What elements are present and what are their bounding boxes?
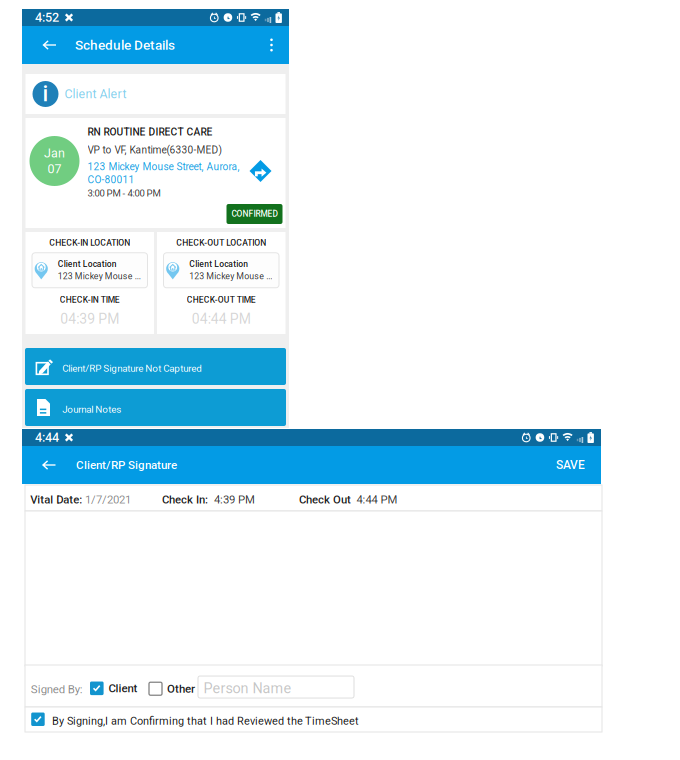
staticText: 04:39 PM xyxy=(60,311,119,327)
button[interactable]: Client/RP Signature Not Captured xyxy=(25,348,286,385)
button[interactable]: i xyxy=(25,74,285,114)
staticText: Vital Date: xyxy=(30,493,82,506)
staticText: 4:44 xyxy=(35,430,59,445)
staticText: Jan xyxy=(44,146,65,160)
staticText: VP to VF, Kantime(6330-MED) xyxy=(87,144,222,156)
staticText: CHECK-OUT TIME xyxy=(187,295,256,305)
staticText: 3:00 PM - 4:00 PM xyxy=(87,188,160,199)
button[interactable]: Back xyxy=(31,446,67,484)
staticText: CONFIRMED xyxy=(231,209,277,219)
staticText: CHECK-OUT LOCATION xyxy=(176,238,266,248)
staticText: 04:44 PM xyxy=(192,311,251,327)
staticText: Person Name xyxy=(203,680,291,697)
button[interactable]: Journal Notes xyxy=(25,389,286,426)
button[interactable]: Back xyxy=(32,26,67,64)
staticText: CHECK-IN LOCATION xyxy=(49,238,130,248)
staticText: 123 Mickey Mouse ... xyxy=(189,271,272,281)
staticText: Check Out xyxy=(299,493,351,506)
staticText: 4:44 PM xyxy=(356,493,397,506)
staticText: Client Alert xyxy=(64,87,126,101)
button[interactable]: Person Name xyxy=(198,676,354,698)
button[interactable]: SAVE xyxy=(546,446,595,484)
button[interactable]: By Signing,I am Confirming that I had Re… xyxy=(25,707,602,732)
staticText: Client Location xyxy=(58,259,117,269)
staticText: Client/RP Signature xyxy=(76,458,177,472)
staticText: Schedule Details xyxy=(75,37,175,53)
staticText: SAVE xyxy=(556,458,585,472)
staticText: Client/RP Signature Not Captured xyxy=(62,362,202,374)
staticText: Signed By: xyxy=(31,682,83,696)
staticText: Check In: xyxy=(162,493,208,506)
button[interactable]: Client xyxy=(90,681,138,695)
button[interactable]: Other xyxy=(149,682,195,695)
staticText: 1/7/2021 xyxy=(85,493,131,506)
staticText: 123 Mickey Mouse ... xyxy=(58,271,141,281)
button[interactable]: More options xyxy=(260,26,283,64)
staticText: RN ROUTINE DIRECT CARE xyxy=(87,126,212,138)
staticText: 4:39 PM xyxy=(214,493,255,506)
button[interactable]: Directions xyxy=(249,160,271,182)
staticText: Other xyxy=(167,682,195,695)
staticText: 07 xyxy=(47,161,61,176)
staticText: CO-80011 xyxy=(87,174,134,186)
staticText: i xyxy=(42,80,48,107)
staticText: Client Location xyxy=(189,259,248,269)
staticText: CHECK-IN TIME xyxy=(60,295,120,305)
staticText: Journal Notes xyxy=(62,403,121,415)
button[interactable]: 123 Mickey Mouse Street, Aurora, xyxy=(87,161,239,186)
staticText: Client xyxy=(109,682,138,695)
staticText: By Signing,I am Confirming that I had Re… xyxy=(52,714,359,727)
staticText: 123 Mickey Mouse Street, Aurora, xyxy=(87,161,239,173)
staticText: 4:52 xyxy=(35,10,59,25)
